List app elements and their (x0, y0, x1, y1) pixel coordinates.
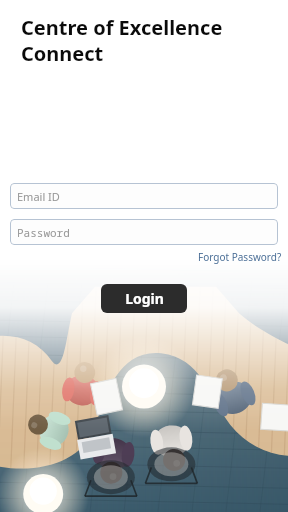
staticText: Forgot Password? (198, 250, 282, 264)
staticText: Centre of Excellence Connect (21, 14, 223, 66)
button[interactable]: Forgot Password? (196, 249, 284, 265)
button[interactable]: Email ID (10, 183, 278, 209)
button[interactable]: Login (101, 284, 187, 313)
staticText: Password (17, 225, 70, 240)
button[interactable]: Password (10, 219, 278, 245)
staticText: Email ID (17, 189, 60, 204)
staticText: Login (125, 289, 164, 308)
